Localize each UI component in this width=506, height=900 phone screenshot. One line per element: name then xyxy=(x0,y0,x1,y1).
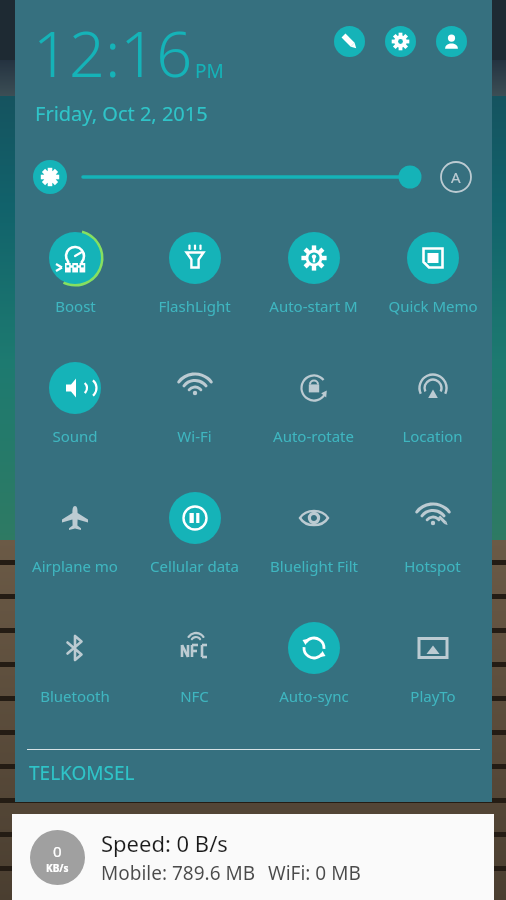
staticText: A xyxy=(451,167,461,187)
button[interactable]: Brightness xyxy=(33,160,67,194)
button[interactable]: Airplane mo xyxy=(15,476,135,606)
staticText: Hotspot xyxy=(404,556,461,576)
staticText: 0 xyxy=(53,841,62,861)
button[interactable]: Location xyxy=(373,346,492,476)
button[interactable]: Hotspot xyxy=(373,476,492,606)
button[interactable]: Edit xyxy=(334,26,365,57)
staticText: Airplane mo xyxy=(32,556,118,576)
button[interactable]: Bluelight Filt xyxy=(254,476,373,606)
button[interactable]: Auto-sync xyxy=(254,606,373,736)
button[interactable]: Quick Memo xyxy=(373,216,492,346)
button[interactable]: Auto-rotate xyxy=(254,346,373,476)
button[interactable]: Auto brightness xyxy=(438,159,474,195)
staticText: KB/s xyxy=(46,861,69,875)
button[interactable]: PlayTo xyxy=(373,606,492,736)
button[interactable]: Bluetooth xyxy=(15,606,135,736)
button[interactable]: FlashLight xyxy=(135,216,254,346)
button[interactable]: Boost xyxy=(15,216,135,346)
staticText: Auto-sync xyxy=(279,686,349,706)
staticText: NFC xyxy=(180,686,209,706)
staticText: Boost xyxy=(55,296,96,316)
staticText: PlayTo xyxy=(410,686,456,706)
staticText: Quick Memo xyxy=(388,296,478,316)
button[interactable]: User profile xyxy=(436,26,467,57)
staticText: Bluetooth xyxy=(40,686,110,706)
staticText: Speed: 0 B/s xyxy=(101,828,228,858)
staticText: Wi-Fi xyxy=(177,426,212,446)
button[interactable]: Settings xyxy=(385,26,416,57)
staticText: Bluelight Filt xyxy=(270,556,358,576)
staticText: Location xyxy=(402,426,463,446)
staticText: TELKOMSEL xyxy=(29,760,135,786)
staticText: Sound xyxy=(52,426,98,446)
button[interactable]: Sound xyxy=(15,346,135,476)
staticText: FlashLight xyxy=(158,296,231,316)
button[interactable]: NFC xyxy=(135,606,254,736)
staticText: WiFi: 0 MB xyxy=(268,860,361,886)
button[interactable] xyxy=(83,157,422,197)
staticText: Mobile: 789.6 MB xyxy=(101,860,256,886)
button[interactable]: Wi-Fi xyxy=(135,346,254,476)
staticText: 12:16 xyxy=(33,10,193,96)
button[interactable]: Cellular data xyxy=(135,476,254,606)
staticText: PM xyxy=(195,58,224,84)
button[interactable]: 0 xyxy=(12,814,494,900)
staticText: Auto-start M xyxy=(269,296,358,316)
staticText: Auto-rotate xyxy=(273,426,354,446)
staticText: Cellular data xyxy=(150,556,239,576)
button[interactable]: Auto-start M xyxy=(254,216,373,346)
staticText: Friday, Oct 2, 2015 xyxy=(35,100,208,127)
